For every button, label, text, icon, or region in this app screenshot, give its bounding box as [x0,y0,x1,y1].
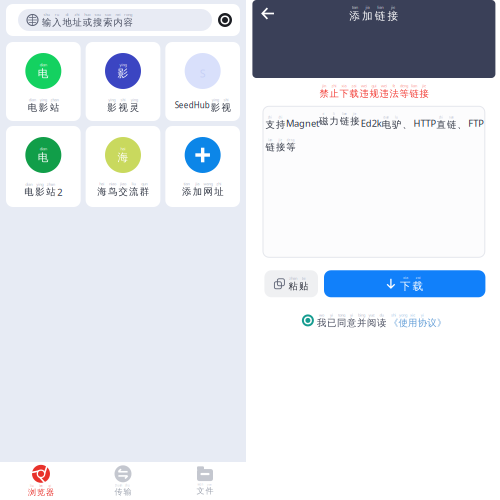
staticText: rong [124,12,132,17]
button[interactable] [165,42,240,121]
staticText: nei [115,12,120,17]
button[interactable]: wo [302,312,446,329]
staticText: li [333,112,335,116]
staticText: 影 [211,102,220,113]
staticText: 》 [437,317,446,329]
staticText: 容 [124,17,133,28]
button[interactable]: wen [164,462,246,500]
staticText: yi [350,312,353,318]
staticText: 阅 [367,317,376,329]
staticText: ying [119,62,126,67]
staticText: FTP [468,117,484,129]
staticText: 电 [382,119,391,130]
staticText: HTTP [413,117,436,129]
button[interactable]: tian [165,126,240,207]
button[interactable]: zhan [264,270,318,297]
staticText: wang [204,181,213,186]
staticText: 添 [349,9,360,22]
button[interactable]: dian [6,126,81,207]
staticText: di [65,12,68,17]
staticText: shi [224,97,229,102]
staticText: 索 [103,17,112,28]
staticText: 止 [329,88,338,99]
staticText: wen [197,483,203,486]
staticText: lian [411,83,417,88]
staticText: zhi [75,12,80,17]
staticText: 磁 [319,115,328,127]
staticText: 贴 [299,280,308,292]
staticText: 并 [357,317,366,329]
staticText: 址 [214,186,223,197]
staticText: jia [365,4,369,10]
staticText: deng [400,83,408,88]
staticText: ci [323,112,325,116]
staticText: 鸟 [108,186,117,197]
staticText: dian [40,146,47,151]
button[interactable]: ying [86,42,160,121]
staticText: wei [361,83,367,88]
staticText: 接 [276,141,285,153]
staticText: xia [341,83,346,88]
button[interactable]: Back [252,4,285,23]
staticText: dian [25,181,32,187]
staticText: wei [381,83,387,88]
staticText: deng [287,138,295,142]
staticText: 电 [38,67,49,80]
staticText: yue [368,312,374,318]
staticText: ying [36,181,43,187]
staticText: 等 [286,141,295,153]
staticText: 海 [117,151,128,164]
staticText: 流 [129,186,138,197]
staticText: 览 [37,487,45,497]
staticText: hai [120,146,125,151]
staticText: gui [371,83,376,88]
staticText: xia [403,275,408,280]
staticText: zai [351,83,356,88]
staticText: dian [40,62,47,67]
staticText: zhi [331,83,336,88]
staticText: 电 [38,151,49,164]
staticText: jia [195,181,199,186]
staticText: huo [84,12,90,17]
staticText: 违 [379,88,388,99]
staticText: qi [48,484,51,488]
staticText: 同 [337,317,346,329]
staticText: 电 [28,102,37,113]
staticText: 网 [204,186,213,197]
button[interactable]: hai [86,126,160,207]
staticText: 浏 [28,487,36,497]
staticText: jie [422,83,426,88]
staticText: SeedHub [175,100,210,110]
staticText: ru [55,12,59,17]
staticText: sou [94,12,100,17]
staticText: 接 [388,9,399,22]
staticText: yi [421,312,424,318]
staticText: 使 [398,317,407,329]
button[interactable]: xia [324,270,485,297]
staticText: tian [352,4,358,10]
staticText: 地 [62,17,71,28]
button[interactable]: dian [6,42,81,121]
staticText: 输 [42,17,51,28]
staticText: tong [338,312,345,318]
staticText: 添 [182,186,191,197]
staticText: 下 [339,88,348,99]
staticText: zhan [289,276,297,281]
staticText: 接 [350,115,359,127]
staticText: 协 [418,317,427,329]
staticText: 意 [347,317,356,329]
staticText: chi [279,116,283,119]
button[interactable]: liu [0,462,82,500]
staticText: 接 [419,88,428,99]
staticText: 力 [329,115,338,127]
staticText: 影 [35,186,44,198]
staticText: shi [120,97,125,102]
staticText: chuan [114,484,122,487]
button[interactable]: chuan [82,462,164,500]
staticText: 搜 [93,17,102,28]
staticText: S [200,66,206,80]
staticText: 链 [409,88,418,99]
staticText: 址 [73,17,82,28]
